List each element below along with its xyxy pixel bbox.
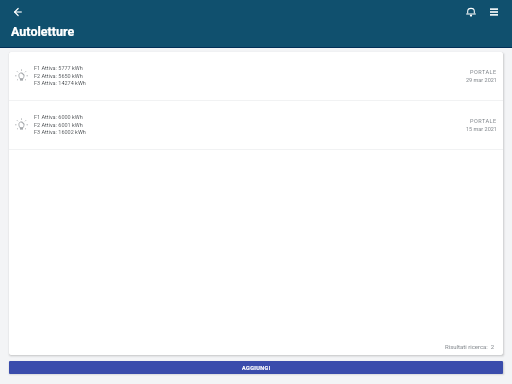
staticText: Risultati ricerca: 2 — [445, 343, 495, 350]
button[interactable]: F1 Attiva: 6000 kWh F2 Attiva: 6001 kWh … — [9, 101, 503, 149]
staticText: 29 mar 2021 — [466, 77, 497, 83]
staticText: F1 Attiva: 5777 kWh F2 Attiva: 5650 kWh … — [34, 65, 86, 86]
button[interactable]: F1 Attiva: 5777 kWh F2 Attiva: 5650 kWh … — [9, 52, 503, 100]
button[interactable]: Back — [10, 4, 26, 20]
staticText: AGGIUNGI — [242, 365, 271, 371]
staticText: PORTALE — [470, 69, 497, 75]
button[interactable]: Notifications — [463, 4, 479, 20]
button[interactable]: Menu — [486, 4, 502, 20]
button[interactable]: AGGIUNGI — [9, 361, 503, 374]
staticText: Autoletture — [11, 24, 75, 39]
staticText: F1 Attiva: 6000 kWh F2 Attiva: 6001 kWh … — [34, 114, 86, 135]
staticText: PORTALE — [470, 118, 497, 124]
staticText: 15 mar 2021 — [466, 126, 497, 132]
